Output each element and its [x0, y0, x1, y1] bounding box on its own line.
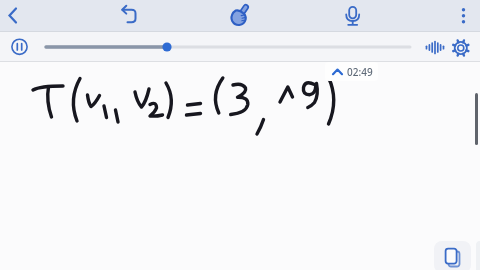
button[interactable]	[113, 0, 144, 31]
button[interactable]	[420, 32, 448, 62]
button[interactable]	[434, 241, 471, 270]
button[interactable]	[4, 32, 34, 62]
button[interactable]	[446, 32, 476, 62]
button[interactable]	[337, 0, 368, 31]
staticText: 02:49	[347, 65, 373, 79]
button[interactable]	[0, 0, 30, 31]
button[interactable]	[40, 32, 415, 62]
button[interactable]	[448, 0, 479, 31]
button[interactable]	[224, 0, 255, 31]
button[interactable]: 02:49	[325, 62, 378, 81]
